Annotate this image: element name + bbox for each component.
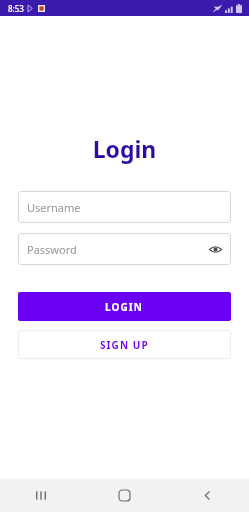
- button[interactable]: Home: [83, 479, 166, 512]
- staticText: 8:53: [8, 3, 24, 14]
- button[interactable]: Back: [166, 479, 249, 512]
- staticText: Password: [27, 242, 77, 257]
- staticText: Username: [27, 200, 81, 215]
- staticText: LOGIN: [105, 300, 144, 314]
- button[interactable]: Show password: [207, 241, 223, 257]
- staticText: Login: [0, 133, 249, 164]
- staticText: SIGN UP: [100, 338, 149, 352]
- button[interactable]: SIGN UP: [18, 330, 231, 359]
- button[interactable]: Password: [18, 233, 231, 265]
- button[interactable]: Recent apps: [0, 479, 83, 512]
- button[interactable]: LOGIN: [18, 292, 231, 321]
- button[interactable]: Username: [18, 191, 231, 223]
